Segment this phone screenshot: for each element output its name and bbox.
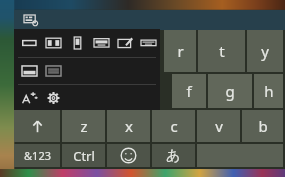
button[interactable]: x — [107, 110, 150, 142]
button[interactable]: Handwriting — [113, 31, 137, 55]
button[interactable] — [107, 144, 150, 167]
button[interactable]: h — [254, 74, 283, 108]
staticText: y — [261, 41, 269, 61]
staticText: f — [186, 81, 192, 101]
staticText: x — [125, 116, 133, 136]
staticText: z — [80, 116, 88, 136]
button[interactable]: Ctrl — [62, 144, 105, 167]
button[interactable]: c — [152, 110, 195, 142]
button[interactable]: g — [208, 74, 252, 108]
button[interactable]: &123 — [14, 144, 60, 167]
button[interactable]: f — [172, 74, 206, 108]
button[interactable]: Docked keyboard — [17, 59, 41, 83]
button[interactable]: Settings — [41, 86, 65, 110]
staticText: あ — [166, 147, 181, 165]
button[interactable]: Floating keyboard — [41, 59, 65, 83]
button[interactable]: Keyboard layout — [21, 10, 41, 30]
staticText: b — [258, 116, 268, 136]
staticText: c — [170, 116, 178, 136]
staticText: v — [215, 116, 223, 136]
button[interactable]: b — [242, 110, 283, 142]
button[interactable]: あ — [152, 144, 195, 167]
staticText: r — [177, 41, 184, 61]
button[interactable]: Ink to text — [17, 86, 41, 110]
button[interactable]: z — [62, 110, 105, 142]
staticText: g — [225, 81, 235, 101]
button[interactable]: y — [247, 30, 283, 72]
button[interactable]: v — [197, 110, 240, 142]
button[interactable]: Standard layout — [89, 31, 113, 55]
button[interactable]: Narrow layout — [65, 31, 89, 55]
staticText: h — [264, 81, 274, 101]
staticText: t — [219, 41, 225, 61]
staticText: &123 — [24, 148, 51, 163]
staticText: Ctrl — [73, 147, 95, 165]
button[interactable] — [14, 110, 60, 142]
button[interactable]: t — [198, 30, 245, 72]
button[interactable]: Wide layout — [137, 31, 160, 55]
button[interactable]: Default layout — [17, 31, 41, 55]
button[interactable]: Split layout — [41, 31, 65, 55]
button[interactable]: r — [164, 30, 196, 72]
